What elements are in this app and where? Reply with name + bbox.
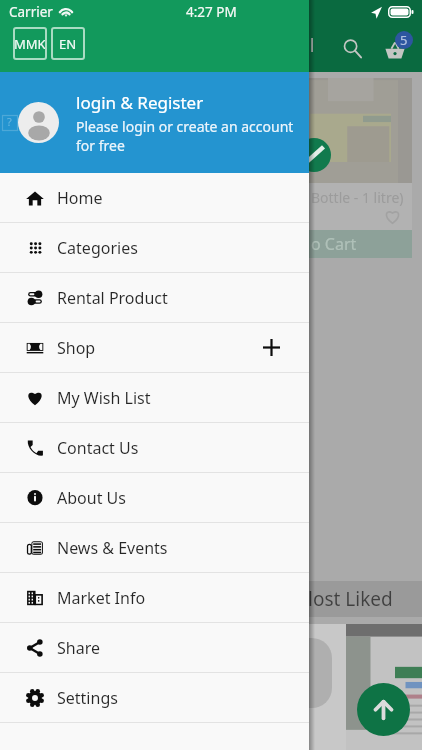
staticText: 5 [400, 31, 408, 49]
button[interactable]: Cart [372, 25, 418, 71]
staticText: Rental Product [57, 287, 168, 309]
button[interactable]: Categories [0, 223, 309, 272]
staticText: Market Info [57, 587, 146, 609]
staticText: News & Events [57, 537, 168, 559]
button[interactable]: About Us [0, 473, 309, 522]
staticText: Home [57, 187, 103, 209]
staticText: Categories [57, 237, 138, 259]
button[interactable]: Share [0, 623, 309, 672]
button[interactable]: My Wish List [0, 373, 309, 422]
button[interactable]: Rental Product [0, 273, 309, 322]
button[interactable]: Settings [0, 673, 309, 722]
staticText: o Cart [311, 233, 357, 255]
staticText: Contact Us [57, 437, 139, 459]
staticText: 4:27 PM [186, 3, 237, 21]
staticText: login & Register [76, 91, 204, 114]
staticText: Please login or create an account for fr… [76, 117, 309, 155]
button[interactable]: Home [0, 173, 309, 222]
staticText: lost Liked [308, 586, 393, 612]
staticText: Shop [57, 337, 96, 359]
button[interactable]: MMK [13, 27, 47, 60]
button[interactable]: Search [329, 25, 375, 71]
button[interactable]: News & Events [0, 523, 309, 572]
button[interactable]: Scroll to top [357, 683, 410, 736]
staticText: Carrier [9, 3, 53, 21]
staticText: Bottle - 1 litre) [311, 188, 404, 207]
staticText: About Us [57, 487, 126, 509]
staticText: EN [59, 35, 77, 53]
button[interactable]: ? [0, 72, 309, 173]
staticText: MMK [14, 35, 46, 53]
button[interactable]: Contact Us [0, 423, 309, 472]
button[interactable]: Shop [0, 323, 309, 372]
staticText: Share [57, 637, 100, 659]
button[interactable]: Market Info [0, 573, 309, 622]
staticText: ll [305, 33, 315, 58]
staticText: ? [7, 114, 12, 129]
staticText: Settings [57, 687, 118, 709]
staticText: My Wish List [57, 387, 151, 409]
button[interactable]: EN [51, 27, 85, 60]
